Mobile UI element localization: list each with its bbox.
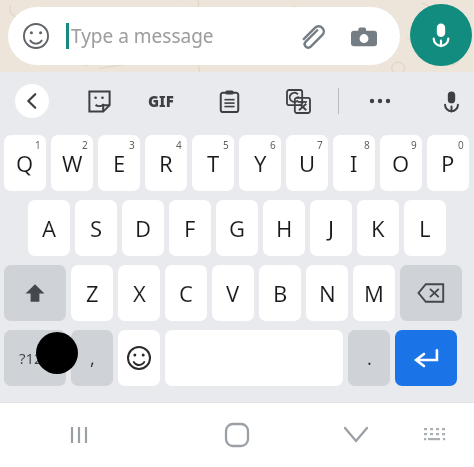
button[interactable]: S: [75, 200, 117, 256]
button[interactable]: Keyboard switch: [396, 402, 474, 467]
staticText: E: [113, 148, 126, 178]
button[interactable]: Y: [239, 135, 281, 191]
staticText: GIF: [148, 91, 174, 111]
button[interactable]: K: [357, 200, 399, 256]
button[interactable]: Emoji: [118, 330, 160, 386]
button[interactable]: Emoji: [20, 20, 52, 52]
button[interactable]: Voice input: [434, 84, 468, 118]
button[interactable]: B: [259, 265, 301, 321]
button[interactable]: Stickers: [82, 84, 116, 118]
button[interactable]: T: [192, 135, 234, 191]
staticText: 5: [223, 138, 229, 152]
staticText: I: [350, 148, 358, 178]
button[interactable]: Translate: [281, 84, 315, 118]
staticText: S: [90, 213, 103, 243]
staticText: U: [299, 148, 316, 178]
staticText: T: [207, 148, 220, 178]
button[interactable]: Attach: [296, 22, 326, 52]
staticText: L: [419, 213, 431, 243]
button[interactable]: GIF: [140, 89, 182, 113]
staticText: D: [135, 213, 152, 243]
button[interactable]: O: [380, 135, 422, 191]
button[interactable]: .: [348, 330, 390, 386]
button[interactable]: U: [286, 135, 328, 191]
button[interactable]: M: [353, 265, 395, 321]
staticText: R: [159, 148, 173, 178]
button[interactable]: J: [310, 200, 352, 256]
staticText: M: [364, 278, 384, 308]
staticText: H: [276, 213, 293, 243]
button[interactable]: G: [216, 200, 258, 256]
button[interactable]: Voice message: [410, 4, 472, 66]
staticText: 8: [364, 138, 370, 152]
staticText: B: [273, 278, 288, 308]
staticText: 6: [270, 138, 276, 152]
button[interactable]: Hide keyboard: [316, 402, 396, 467]
staticText: 1: [35, 138, 41, 152]
button[interactable]: Shift: [4, 265, 66, 321]
button[interactable]: ,: [71, 330, 113, 386]
button[interactable]: X: [118, 265, 160, 321]
staticText: X: [133, 278, 146, 308]
button[interactable]: Back: [15, 84, 49, 118]
staticText: Type a message: [71, 23, 214, 49]
button[interactable]: E: [98, 135, 140, 191]
staticText: G: [229, 213, 246, 243]
staticText: 0: [458, 138, 464, 152]
staticText: C: [179, 278, 193, 308]
button[interactable]: A: [28, 200, 70, 256]
button[interactable]: Q: [4, 135, 46, 191]
staticText: F: [184, 213, 196, 243]
staticText: Q: [16, 148, 34, 178]
staticText: 2: [82, 138, 88, 152]
staticText: Y: [254, 148, 267, 178]
staticText: O: [392, 148, 410, 178]
button[interactable]: D: [122, 200, 164, 256]
button[interactable]: W: [51, 135, 93, 191]
button[interactable]: ?123: [4, 330, 66, 386]
button[interactable]: N: [306, 265, 348, 321]
button[interactable]: Home: [158, 402, 316, 467]
button[interactable]: Backspace: [400, 265, 462, 321]
button[interactable]: Enter: [395, 330, 457, 386]
button[interactable]: More options: [363, 89, 397, 113]
staticText: 4: [176, 138, 182, 152]
button[interactable]: Recents: [0, 402, 158, 467]
staticText: A: [42, 213, 57, 243]
button[interactable]: C: [165, 265, 207, 321]
staticText: ?123: [19, 348, 52, 368]
staticText: K: [371, 213, 385, 243]
staticText: 9: [411, 138, 417, 152]
staticText: 3: [129, 138, 135, 152]
button[interactable]: H: [263, 200, 305, 256]
staticText: ,: [90, 346, 95, 371]
staticText: W: [62, 148, 83, 178]
staticText: J: [328, 213, 335, 243]
staticText: 7: [317, 138, 323, 152]
button[interactable]: R: [145, 135, 187, 191]
button[interactable]: V: [212, 265, 254, 321]
staticText: N: [319, 278, 336, 308]
staticText: Z: [86, 278, 99, 308]
button[interactable]: I: [333, 135, 375, 191]
button[interactable]: Emoji: [8, 7, 400, 65]
button[interactable]: Camera: [349, 23, 379, 53]
staticText: P: [441, 148, 455, 178]
button[interactable]: F: [169, 200, 211, 256]
button[interactable]: L: [404, 200, 446, 256]
button[interactable]: P: [427, 135, 469, 191]
button[interactable]: Clipboard: [212, 84, 246, 118]
staticText: V: [226, 278, 240, 308]
button[interactable]: Z: [71, 265, 113, 321]
staticText: .: [367, 346, 372, 371]
